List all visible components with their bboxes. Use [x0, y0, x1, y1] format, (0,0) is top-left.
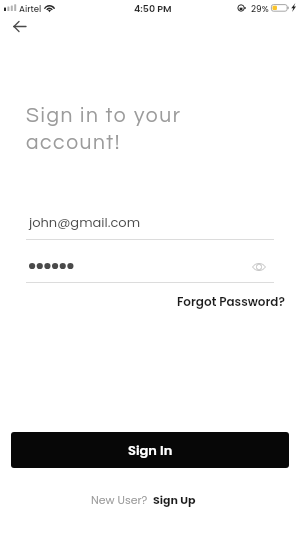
staticText: 4:50 PM	[134, 2, 172, 15]
button[interactable]: Back	[4, 11, 34, 41]
button[interactable]: Sign Up	[153, 492, 196, 507]
button[interactable]: Forgot Password?	[177, 293, 285, 310]
staticText: Airtel	[19, 3, 42, 15]
button[interactable]: Sign In	[11, 432, 289, 468]
staticText: Sign in to your account!	[26, 105, 182, 154]
staticText: Sign Up	[153, 492, 196, 507]
staticText: 29%	[251, 3, 269, 15]
staticText: john@gmail.com	[29, 213, 141, 231]
staticText: New User?	[91, 492, 148, 507]
staticText: Sign In	[128, 441, 173, 459]
staticText: Forgot Password?	[177, 293, 285, 310]
button[interactable]: Show password	[249, 257, 268, 276]
